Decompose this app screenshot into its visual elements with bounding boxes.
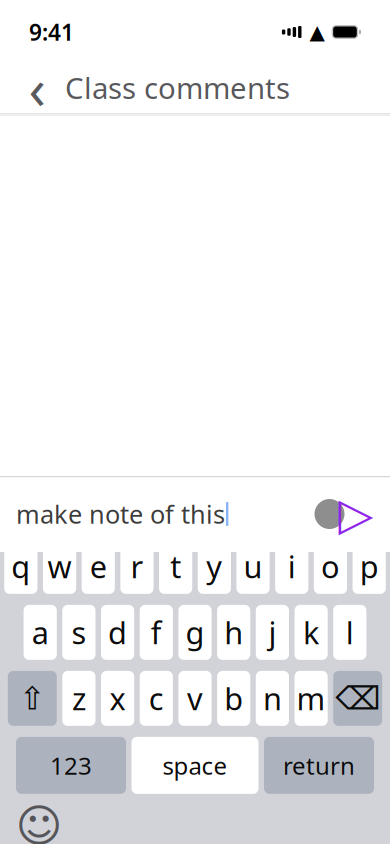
button[interactable]: g xyxy=(178,605,212,660)
button[interactable]: q xyxy=(4,539,37,594)
button[interactable]: y xyxy=(198,539,231,594)
staticText: p xyxy=(360,546,379,587)
staticText: q xyxy=(11,546,30,587)
staticText: e xyxy=(90,546,107,587)
button[interactable]: c xyxy=(140,671,173,726)
staticText: r xyxy=(130,546,143,587)
staticText: t xyxy=(170,546,181,587)
button[interactable]: h xyxy=(217,605,250,660)
button[interactable]: m xyxy=(294,671,328,726)
staticText: j xyxy=(268,612,276,653)
button[interactable]: v xyxy=(178,671,212,726)
staticText: m xyxy=(297,678,326,719)
button[interactable]: a xyxy=(24,605,57,660)
button[interactable]: n xyxy=(256,671,289,726)
staticText: c xyxy=(149,678,164,719)
button[interactable]: l xyxy=(333,605,366,660)
button[interactable]: Back xyxy=(9,59,65,115)
staticText: x xyxy=(110,678,126,719)
staticText: 123 xyxy=(50,749,92,781)
button[interactable]: z xyxy=(62,671,95,726)
button[interactable]: Emoji xyxy=(12,800,66,844)
staticText: v xyxy=(187,678,203,719)
staticText: ▷ xyxy=(338,488,373,540)
staticText: l xyxy=(346,612,354,653)
staticText: d xyxy=(108,612,127,653)
staticText: y xyxy=(206,546,222,587)
button[interactable]: return xyxy=(264,737,374,794)
staticText: ⇧ xyxy=(19,680,46,716)
button[interactable]: x xyxy=(101,671,134,726)
button[interactable]: t xyxy=(159,539,192,594)
button[interactable]: i xyxy=(275,539,308,594)
staticText: ▲ xyxy=(309,21,324,43)
button[interactable]: k xyxy=(294,605,328,660)
staticText: 9:41 xyxy=(29,17,74,47)
staticText: ☺ xyxy=(15,800,62,844)
staticText: make note of this xyxy=(16,497,225,531)
staticText: return xyxy=(283,749,355,781)
staticText: k xyxy=(303,612,319,653)
staticText: ‹ xyxy=(28,50,45,125)
button[interactable]: r xyxy=(120,539,154,594)
staticText: ⌫ xyxy=(335,680,380,716)
staticText: z xyxy=(72,678,86,719)
button[interactable]: Send xyxy=(304,490,384,538)
staticText: b xyxy=(224,678,243,719)
staticText: s xyxy=(71,612,86,653)
button[interactable]: u xyxy=(236,539,270,594)
button[interactable]: Shift xyxy=(8,671,57,726)
staticText: w xyxy=(48,546,72,587)
button[interactable]: e xyxy=(82,539,115,594)
button[interactable]: p xyxy=(352,539,386,594)
staticText: h xyxy=(224,612,243,653)
staticText: Class comments xyxy=(65,68,290,107)
button[interactable]: space xyxy=(131,737,258,794)
staticText: o xyxy=(321,546,340,587)
button[interactable]: w xyxy=(43,539,76,594)
staticText: i xyxy=(288,546,296,587)
button[interactable]: 123 xyxy=(16,737,126,794)
staticText: space xyxy=(162,749,227,781)
staticText: n xyxy=(263,678,282,719)
button[interactable]: b xyxy=(217,671,250,726)
button[interactable]: f xyxy=(140,605,173,660)
button[interactable]: d xyxy=(101,605,134,660)
staticText: a xyxy=(32,612,49,653)
button[interactable]: Delete xyxy=(333,671,382,726)
button[interactable]: s xyxy=(62,605,95,660)
button[interactable]: o xyxy=(314,539,347,594)
button[interactable]: j xyxy=(256,605,289,660)
staticText: f xyxy=(151,612,162,653)
staticText: g xyxy=(185,612,204,653)
staticText: u xyxy=(244,546,263,587)
